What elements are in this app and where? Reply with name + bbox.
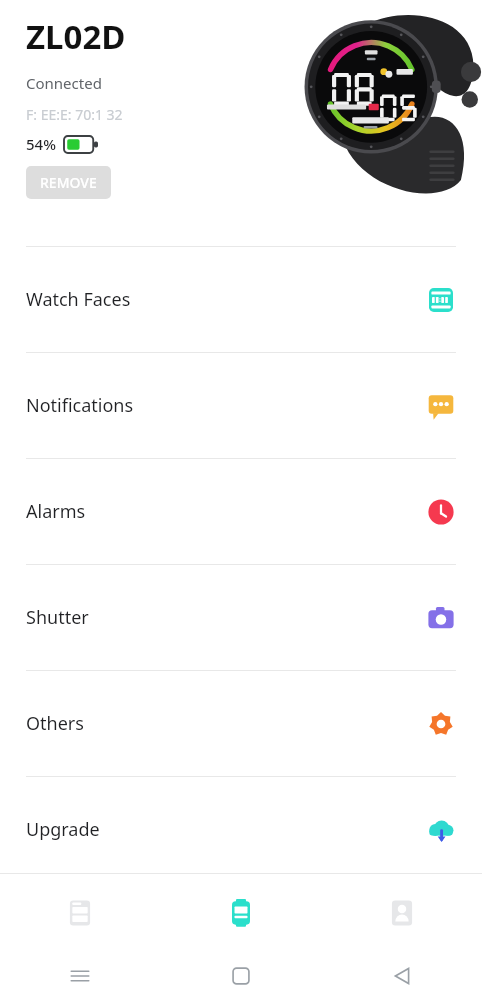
staticText: Connected bbox=[26, 73, 102, 93]
staticText: Notifications bbox=[26, 393, 134, 418]
button[interactable]: Shutter bbox=[0, 565, 482, 670]
button[interactable]: Others bbox=[0, 671, 482, 776]
staticText: ZL02D bbox=[26, 14, 126, 59]
staticText: Upgrade bbox=[26, 817, 100, 842]
staticText: Watch Faces bbox=[26, 287, 131, 312]
button[interactable]: REMOVE bbox=[26, 166, 111, 199]
staticText: Others bbox=[26, 711, 84, 736]
staticText: REMOVE bbox=[40, 173, 97, 192]
button[interactable]: Back bbox=[321, 952, 482, 1000]
button[interactable]: Home bbox=[160, 952, 321, 1000]
staticText: Shutter bbox=[26, 605, 89, 630]
button[interactable]: Device bbox=[160, 874, 321, 952]
button[interactable]: Alarms bbox=[0, 459, 482, 564]
staticText: F: EE:E: 70:1 32 bbox=[26, 105, 123, 124]
button[interactable]: Upgrade bbox=[0, 777, 482, 882]
button[interactable]: Notifications bbox=[0, 353, 482, 458]
staticText: 54% bbox=[26, 134, 56, 154]
button[interactable]: Recents bbox=[0, 952, 160, 1000]
button[interactable]: Data bbox=[0, 874, 160, 952]
button[interactable]: Watch Faces bbox=[0, 247, 482, 352]
button[interactable]: Profile bbox=[321, 874, 482, 952]
staticText: Alarms bbox=[26, 499, 86, 524]
